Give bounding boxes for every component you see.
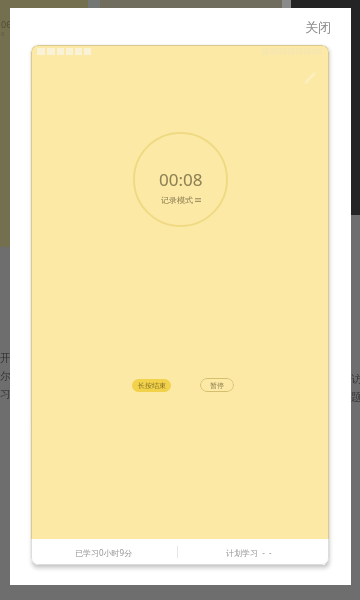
- staticText: 8: [1, 30, 5, 38]
- staticText: 题: [351, 390, 360, 404]
- button[interactable]: 暂停: [200, 378, 234, 392]
- staticText: 06: [1, 18, 12, 30]
- staticText: 记录模式: [161, 195, 193, 205]
- staticText: 计划学习 - -: [226, 547, 272, 558]
- button[interactable]: 长按结束: [132, 379, 171, 392]
- button[interactable]: 关闭: [298, 14, 338, 40]
- button[interactable]: 编辑: [301, 69, 319, 87]
- staticText: 尔: [0, 369, 11, 383]
- staticText: 暂停: [210, 381, 224, 390]
- staticText: 关闭: [305, 19, 331, 35]
- button[interactable]: 已学习0小时9分: [31, 539, 177, 565]
- staticText: 开: [0, 351, 11, 365]
- staticText: 00:08: [159, 168, 203, 191]
- staticText: 已学习0小时9分: [75, 547, 133, 558]
- staticText: 习: [0, 387, 11, 401]
- button[interactable]: 记录模式: [161, 195, 201, 205]
- button[interactable]: 计划学习 - -: [178, 539, 329, 565]
- staticText: 长按结束: [138, 381, 166, 390]
- staticText: 访: [351, 372, 360, 386]
